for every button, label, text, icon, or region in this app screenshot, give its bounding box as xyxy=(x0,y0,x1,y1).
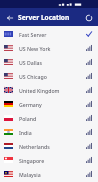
staticText: Malaysia xyxy=(19,171,86,178)
button[interactable]: US Dallas xyxy=(0,55,98,69)
staticText: Fast Server xyxy=(19,31,86,38)
staticText: United Kingdom xyxy=(19,87,86,94)
button[interactable]: Back xyxy=(4,12,15,23)
other: Signal strength xyxy=(86,129,92,135)
button[interactable]: Refresh xyxy=(82,11,95,24)
button[interactable]: US New York xyxy=(0,41,98,55)
button[interactable]: US Chicago xyxy=(0,69,98,83)
other: Signal strength xyxy=(86,101,92,107)
staticText: Netherlands xyxy=(19,143,86,150)
button[interactable]: Poland xyxy=(0,111,98,125)
button[interactable]: Malaysia xyxy=(0,167,98,181)
staticText: India xyxy=(19,129,86,136)
staticText: Singapore xyxy=(19,157,86,164)
other: Signal strength xyxy=(86,171,92,177)
button[interactable]: Netherlands xyxy=(0,139,98,153)
staticText: Poland xyxy=(19,115,86,122)
other: Signal strength xyxy=(86,143,92,149)
staticText: US Dallas xyxy=(19,59,86,66)
other: Signal strength xyxy=(86,45,92,51)
staticText: Server Location xyxy=(18,13,82,22)
other: Signal strength xyxy=(86,73,92,79)
other: Selected xyxy=(86,31,92,37)
staticText: Germany xyxy=(19,101,86,108)
staticText: US New York xyxy=(19,45,86,52)
button[interactable]: Singapore xyxy=(0,153,98,167)
other: Signal strength xyxy=(86,59,92,65)
other: Signal strength xyxy=(86,115,92,121)
button[interactable]: United Kingdom xyxy=(0,83,98,97)
other: Signal strength xyxy=(86,157,92,163)
button[interactable]: India xyxy=(0,125,98,139)
other: Signal strength xyxy=(86,87,92,93)
button[interactable]: Germany xyxy=(0,97,98,111)
button[interactable]: Fast Server xyxy=(0,27,98,41)
staticText: US Chicago xyxy=(19,73,86,80)
